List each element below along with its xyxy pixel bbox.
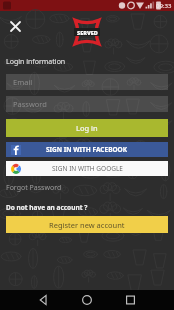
button[interactable]: Register new account <box>6 216 168 233</box>
staticText: Register new account <box>49 220 125 230</box>
button[interactable]: Password <box>6 96 168 112</box>
button[interactable]: Forgot Password <box>6 183 62 193</box>
staticText: Login information <box>6 57 66 67</box>
staticText: SIGN IN WITH FACEBOOK <box>46 145 128 154</box>
staticText: Email <box>13 77 33 87</box>
button[interactable]: Email <box>6 74 168 90</box>
staticText: SERVED <box>77 29 98 36</box>
button[interactable]: Log in <box>6 119 168 137</box>
staticText: 09:33 <box>156 2 172 10</box>
button[interactable]: Close <box>6 17 24 35</box>
staticText: Password <box>13 99 47 109</box>
staticText: Forgot Password <box>6 183 62 193</box>
button[interactable]: SIGN IN WITH GOOGLE <box>6 161 168 176</box>
staticText: Log in <box>76 123 98 133</box>
staticText: SIGN IN WITH GOOGLE <box>52 164 123 173</box>
button[interactable]: SIGN IN WITH FACEBOOK <box>6 142 168 157</box>
staticText: Do not have an account ? <box>6 203 88 212</box>
